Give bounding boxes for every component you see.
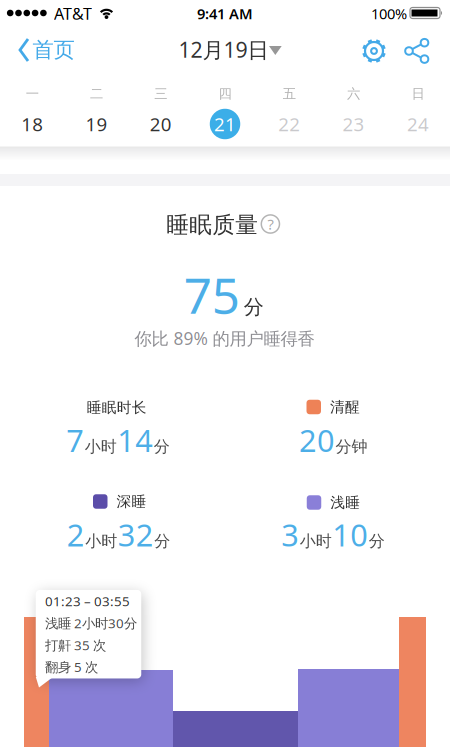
staticText: 你比 89% 的用户睡得香 <box>134 327 314 350</box>
button[interactable]: 首页 <box>0 0 450 747</box>
staticText: 22 <box>278 112 300 136</box>
staticText: 日 <box>411 86 424 102</box>
staticText: 01:23 – 03:55 <box>45 592 130 610</box>
staticText: 分 <box>154 437 170 456</box>
staticText: 分 <box>244 295 264 319</box>
staticText: 21 <box>214 112 236 136</box>
staticText: 24 <box>407 112 429 136</box>
staticText: 睡眠时长 <box>87 398 147 416</box>
staticText: 18 <box>21 112 43 136</box>
staticText: 23 <box>343 112 365 136</box>
button[interactable]: 22 <box>272 107 306 141</box>
button[interactable]: 24 <box>401 107 435 141</box>
staticText: 14 <box>117 420 153 460</box>
staticText: ? <box>267 214 273 234</box>
staticText: 清醒 <box>330 398 360 416</box>
staticText: 一 <box>26 86 39 102</box>
staticText: 四 <box>218 86 231 102</box>
staticText: 分 <box>369 531 385 551</box>
staticText: 75 <box>184 262 240 327</box>
staticText: 小时 <box>85 531 117 551</box>
staticText: 六 <box>347 86 360 102</box>
button[interactable]: 睡眠质量说明 <box>261 214 279 234</box>
staticText: 二 <box>90 86 103 102</box>
staticText: AT&T <box>54 3 92 24</box>
staticText: 100% <box>371 4 407 23</box>
staticText: 小时 <box>300 531 332 551</box>
button[interactable]: 20 <box>144 107 178 141</box>
button[interactable]: 12月19日 <box>0 0 450 747</box>
button[interactable]: 18 <box>15 107 49 141</box>
staticText: 20 <box>299 420 335 460</box>
staticText: 10 <box>332 514 368 555</box>
staticText: 9:41 AM <box>197 4 253 23</box>
staticText: 五 <box>283 86 296 102</box>
staticText: 7 <box>66 420 84 460</box>
staticText: 小时 <box>85 437 117 456</box>
staticText: 2 <box>67 514 85 555</box>
staticText: 睡眠质量 <box>166 211 258 239</box>
staticText: 翻身 5 次 <box>45 658 98 676</box>
button[interactable]: Settings <box>0 0 450 747</box>
button[interactable]: Share <box>0 0 450 747</box>
staticText: 分 <box>154 531 170 551</box>
staticText: 浅睡 2小时30分 <box>45 614 137 632</box>
staticText: 深睡 <box>116 492 146 510</box>
button[interactable]: 21 <box>208 107 242 141</box>
staticText: 浅睡 <box>330 493 360 511</box>
staticText: 分钟 <box>335 437 367 456</box>
button[interactable]: 23 <box>337 107 371 141</box>
staticText: 打鼾 35 次 <box>45 636 106 654</box>
staticText: 3 <box>281 514 299 555</box>
staticText: 12月19日 <box>178 35 268 64</box>
staticText: 20 <box>150 112 172 136</box>
staticText: 19 <box>85 112 107 136</box>
staticText: 首页 <box>32 37 74 63</box>
button[interactable]: 19 <box>79 107 113 141</box>
staticText: 三 <box>154 86 167 102</box>
staticText: 32 <box>118 514 154 555</box>
